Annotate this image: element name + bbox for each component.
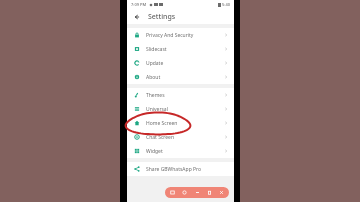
button[interactable]: About [127, 70, 234, 84]
button[interactable]: Undo [194, 189, 201, 196]
staticText: Privacy And Security [146, 32, 194, 39]
button[interactable]: Close [218, 189, 225, 196]
staticText: About [146, 74, 161, 81]
staticText: Widget [146, 148, 163, 155]
button[interactable]: Privacy And Security [127, 28, 234, 42]
staticText: Settings [148, 12, 176, 22]
staticText: Share GBWhatsApp Pro [146, 166, 202, 173]
staticText: Slidecast [146, 46, 167, 53]
staticText: Universal [146, 106, 168, 113]
button[interactable]: Update [127, 56, 234, 70]
button[interactable]: Chat Screen [127, 130, 234, 144]
button[interactable]: Universal [127, 102, 234, 116]
staticText: Themes [146, 92, 165, 99]
staticText: Home Screen [146, 120, 178, 127]
staticText: Update [146, 60, 164, 67]
staticText: Chat Screen [146, 134, 175, 141]
button[interactable]: Widget [127, 144, 234, 158]
staticText: 5:40 [222, 2, 230, 7]
button[interactable]: Home Screen [127, 116, 234, 130]
button[interactable]: Screenshot [169, 189, 176, 196]
button[interactable]: Record [181, 189, 188, 196]
button[interactable]: Slidecast [127, 42, 234, 56]
staticText: 7:09 PM [131, 2, 147, 7]
button[interactable]: Delete [206, 189, 213, 196]
button[interactable]: Back [131, 11, 142, 22]
button[interactable]: Themes [127, 88, 234, 102]
button[interactable]: Share GBWhatsApp Pro [127, 162, 234, 176]
